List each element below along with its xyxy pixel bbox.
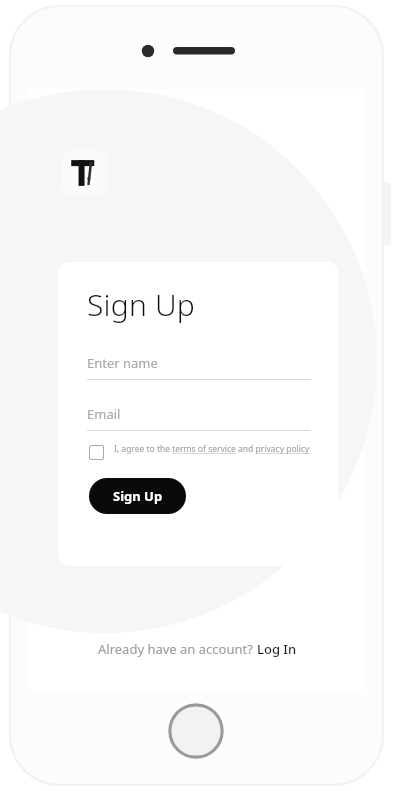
staticText: Enter name [87, 354, 158, 372]
button[interactable]: Enter name [87, 354, 311, 380]
staticText: Log In [257, 640, 297, 658]
staticText: Email [87, 405, 121, 423]
staticText: Sign Up [113, 487, 163, 505]
button[interactable]: I, agree to the terms of service and pri… [87, 443, 311, 458]
staticText: Already have an account? [98, 640, 257, 658]
button[interactable]: App logo [62, 150, 108, 196]
button[interactable]: Email [87, 405, 311, 431]
staticText: I, agree to the terms of service and pri… [114, 443, 310, 455]
button[interactable]: Sign Up [89, 478, 186, 514]
button[interactable]: Log In [257, 640, 297, 658]
staticText: Sign Up [87, 284, 195, 325]
button[interactable]: Home [168, 703, 224, 759]
